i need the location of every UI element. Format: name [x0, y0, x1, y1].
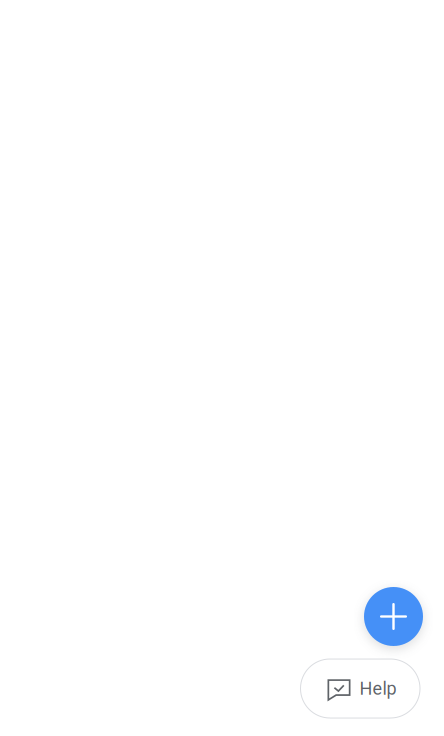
button[interactable]: Compose: [364, 587, 423, 646]
staticText: Help: [359, 678, 396, 699]
button[interactable]: Help: [300, 659, 420, 718]
